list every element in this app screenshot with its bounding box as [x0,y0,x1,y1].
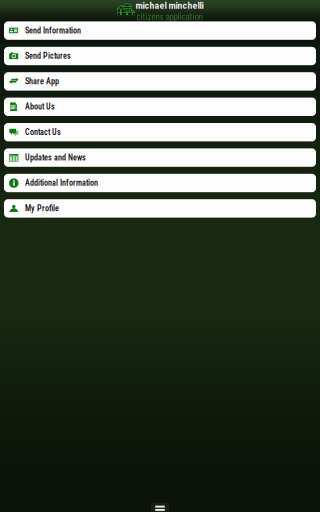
staticText: Send Information [25,26,81,35]
staticText: Send Pictures [25,51,71,61]
button[interactable]: About Us [4,98,316,116]
button[interactable]: Contact Us [4,123,316,141]
button[interactable]: Additional Information [4,174,316,192]
button[interactable]: Share App [4,72,316,91]
staticText: Additional Information [25,178,98,188]
button[interactable]: Send Pictures [4,47,316,65]
staticText: My Profile [25,204,59,213]
button[interactable]: Updates and News [4,148,316,167]
staticText: Share App [25,77,59,86]
button[interactable]: Send Information [4,21,316,40]
staticText: michael minchelli [135,0,203,11]
button[interactable]: Menu [151,503,169,512]
staticText: About Us [25,102,55,111]
button[interactable]: My Profile [4,199,316,218]
staticText: Updates and News [25,153,86,162]
staticText: citizens application [136,11,202,22]
staticText: Contact Us [25,127,61,137]
